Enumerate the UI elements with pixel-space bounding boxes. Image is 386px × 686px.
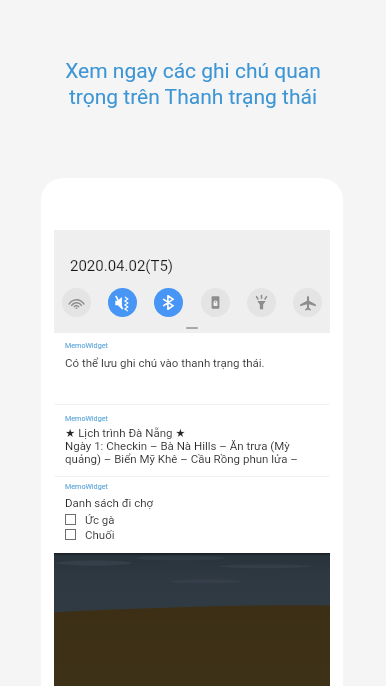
staticText: Ức gà bbox=[85, 513, 115, 526]
button[interactable]: Bluetooth bbox=[154, 288, 183, 317]
button[interactable]: Rotation lock bbox=[201, 288, 230, 317]
staticText: Có thể lưu ghi chú vào thanh trạng thái. bbox=[65, 356, 265, 369]
button[interactable]: MemoWidget bbox=[54, 477, 330, 553]
button[interactable]: Airplane mode bbox=[293, 288, 322, 317]
staticText: Ngày 1: Checkin – Bà Nà Hills – Ăn trưa … bbox=[65, 439, 322, 465]
staticText: ★ Lịch trình Đà Nẵng ★ bbox=[65, 426, 186, 439]
button[interactable]: Mute bbox=[108, 288, 137, 317]
staticText: MemoWidget bbox=[65, 414, 108, 422]
staticText: MemoWidget bbox=[65, 341, 108, 349]
button[interactable]: Flashlight bbox=[247, 288, 276, 317]
staticText: 2020.04.02(T5) bbox=[70, 257, 174, 275]
staticText: MemoWidget bbox=[65, 482, 108, 490]
staticText: Xem ngay các ghi chú quan trọng trên Tha… bbox=[20, 59, 366, 109]
button[interactable]: MemoWidget bbox=[54, 405, 330, 476]
staticText: Danh sách đi chợ bbox=[65, 496, 154, 509]
button[interactable]: Wi-Fi bbox=[62, 288, 91, 317]
staticText: Chuối bbox=[85, 528, 115, 541]
button[interactable]: MemoWidget bbox=[54, 333, 330, 404]
